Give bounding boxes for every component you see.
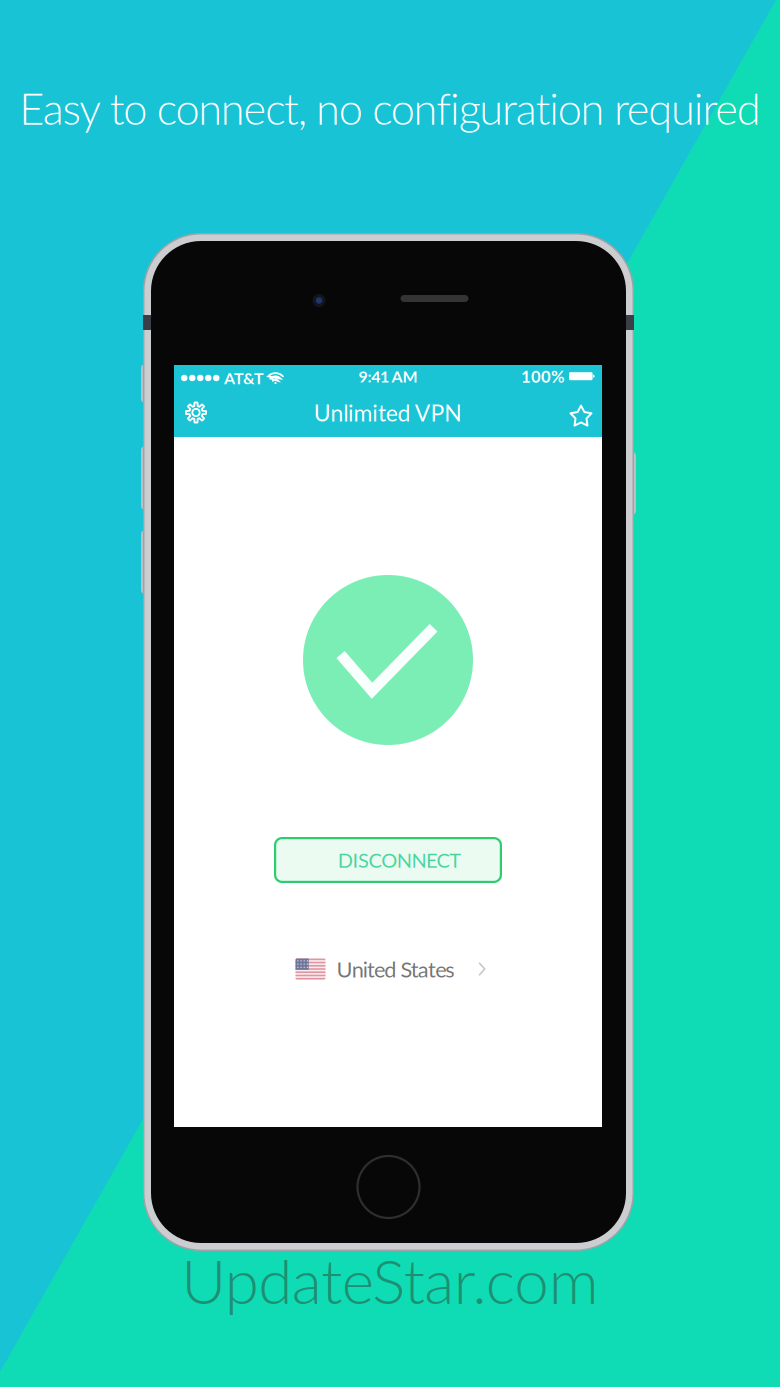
staticText: 100% [521, 366, 565, 386]
staticText: United States [336, 956, 454, 982]
staticText: Easy to connect, no configuration requir… [19, 82, 761, 134]
staticText: 9:41 AM [359, 367, 417, 386]
button[interactable]: Favorite [557, 391, 605, 440]
button[interactable]: United States [295, 954, 485, 984]
staticText: DISCONNECT [338, 848, 461, 872]
staticText: UpdateStar.com [181, 1243, 599, 1317]
button[interactable]: DISCONNECT [274, 837, 502, 883]
button[interactable]: Settings [174, 388, 218, 437]
staticText: Unlimited VPN [314, 399, 462, 426]
staticText: AT&T [224, 368, 264, 388]
